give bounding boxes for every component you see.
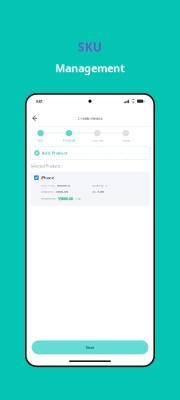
button[interactable]: Next <box>32 340 148 354</box>
staticText: 9:41 <box>36 98 43 104</box>
staticText: 60000.0 <box>57 184 70 187</box>
staticText: Info <box>38 139 44 142</box>
staticText: (1%) <box>75 197 81 200</box>
staticText: SKU <box>78 39 102 55</box>
staticText: 1 <box>105 184 107 187</box>
staticText: Next <box>85 345 94 350</box>
staticText: iPhone <box>41 175 54 180</box>
staticText: Add Product <box>42 150 68 156</box>
staticText: 9.00 <box>97 190 104 193</box>
staticText: Management <box>55 61 125 75</box>
staticText: Products <box>63 139 75 142</box>
staticText: 59000.00 <box>58 196 73 201</box>
staticText: Quantity: <box>92 184 104 187</box>
staticText: Selected Products : <box>31 163 63 168</box>
button[interactable]: Back <box>30 113 40 123</box>
staticText: Unit Price: <box>41 184 56 187</box>
staticText: Customer <box>91 139 104 142</box>
staticText: Review <box>122 139 130 142</box>
staticText: 60000.00 <box>41 197 56 200</box>
button[interactable]: Add Product <box>31 146 149 160</box>
staticText: Tax: <box>92 190 96 193</box>
staticText: 1000.00 <box>55 190 68 193</box>
staticText: Discount: <box>41 190 54 193</box>
staticText: Create invoice <box>77 115 102 121</box>
